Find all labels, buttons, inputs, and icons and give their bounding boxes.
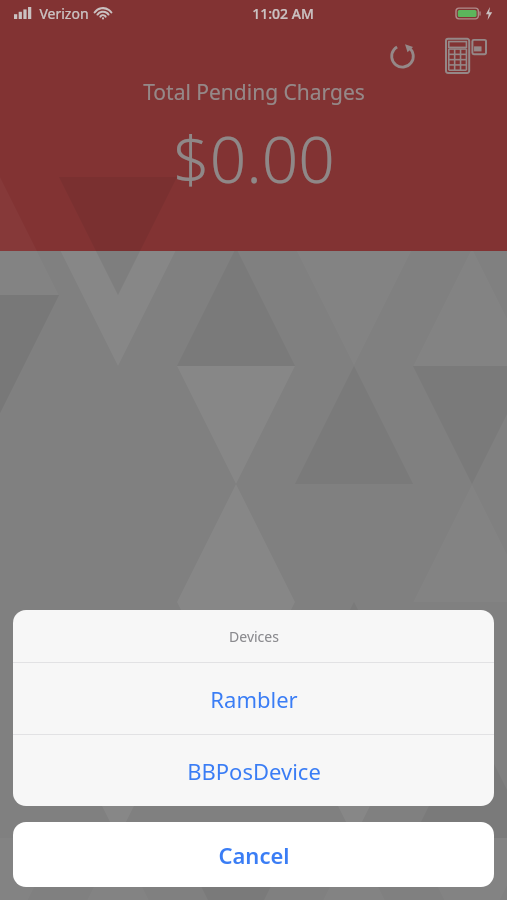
staticText: $0.00: [173, 115, 335, 202]
staticText: Rambler: [210, 684, 298, 714]
staticText: Devices: [229, 627, 279, 646]
staticText: BBPosDevice: [187, 756, 321, 786]
staticText: Total Pending Charges: [143, 78, 365, 107]
button[interactable]: Rambler: [13, 663, 494, 734]
button[interactable]: BBPosDevice: [13, 735, 494, 806]
staticText: Verizon: [39, 4, 89, 23]
button[interactable]: Card reader: [441, 30, 491, 80]
button[interactable]: Cancel: [13, 822, 494, 887]
staticText: Cancel: [218, 840, 290, 870]
staticText: 11:02 AM: [252, 4, 314, 23]
button[interactable]: Refresh: [379, 32, 425, 78]
